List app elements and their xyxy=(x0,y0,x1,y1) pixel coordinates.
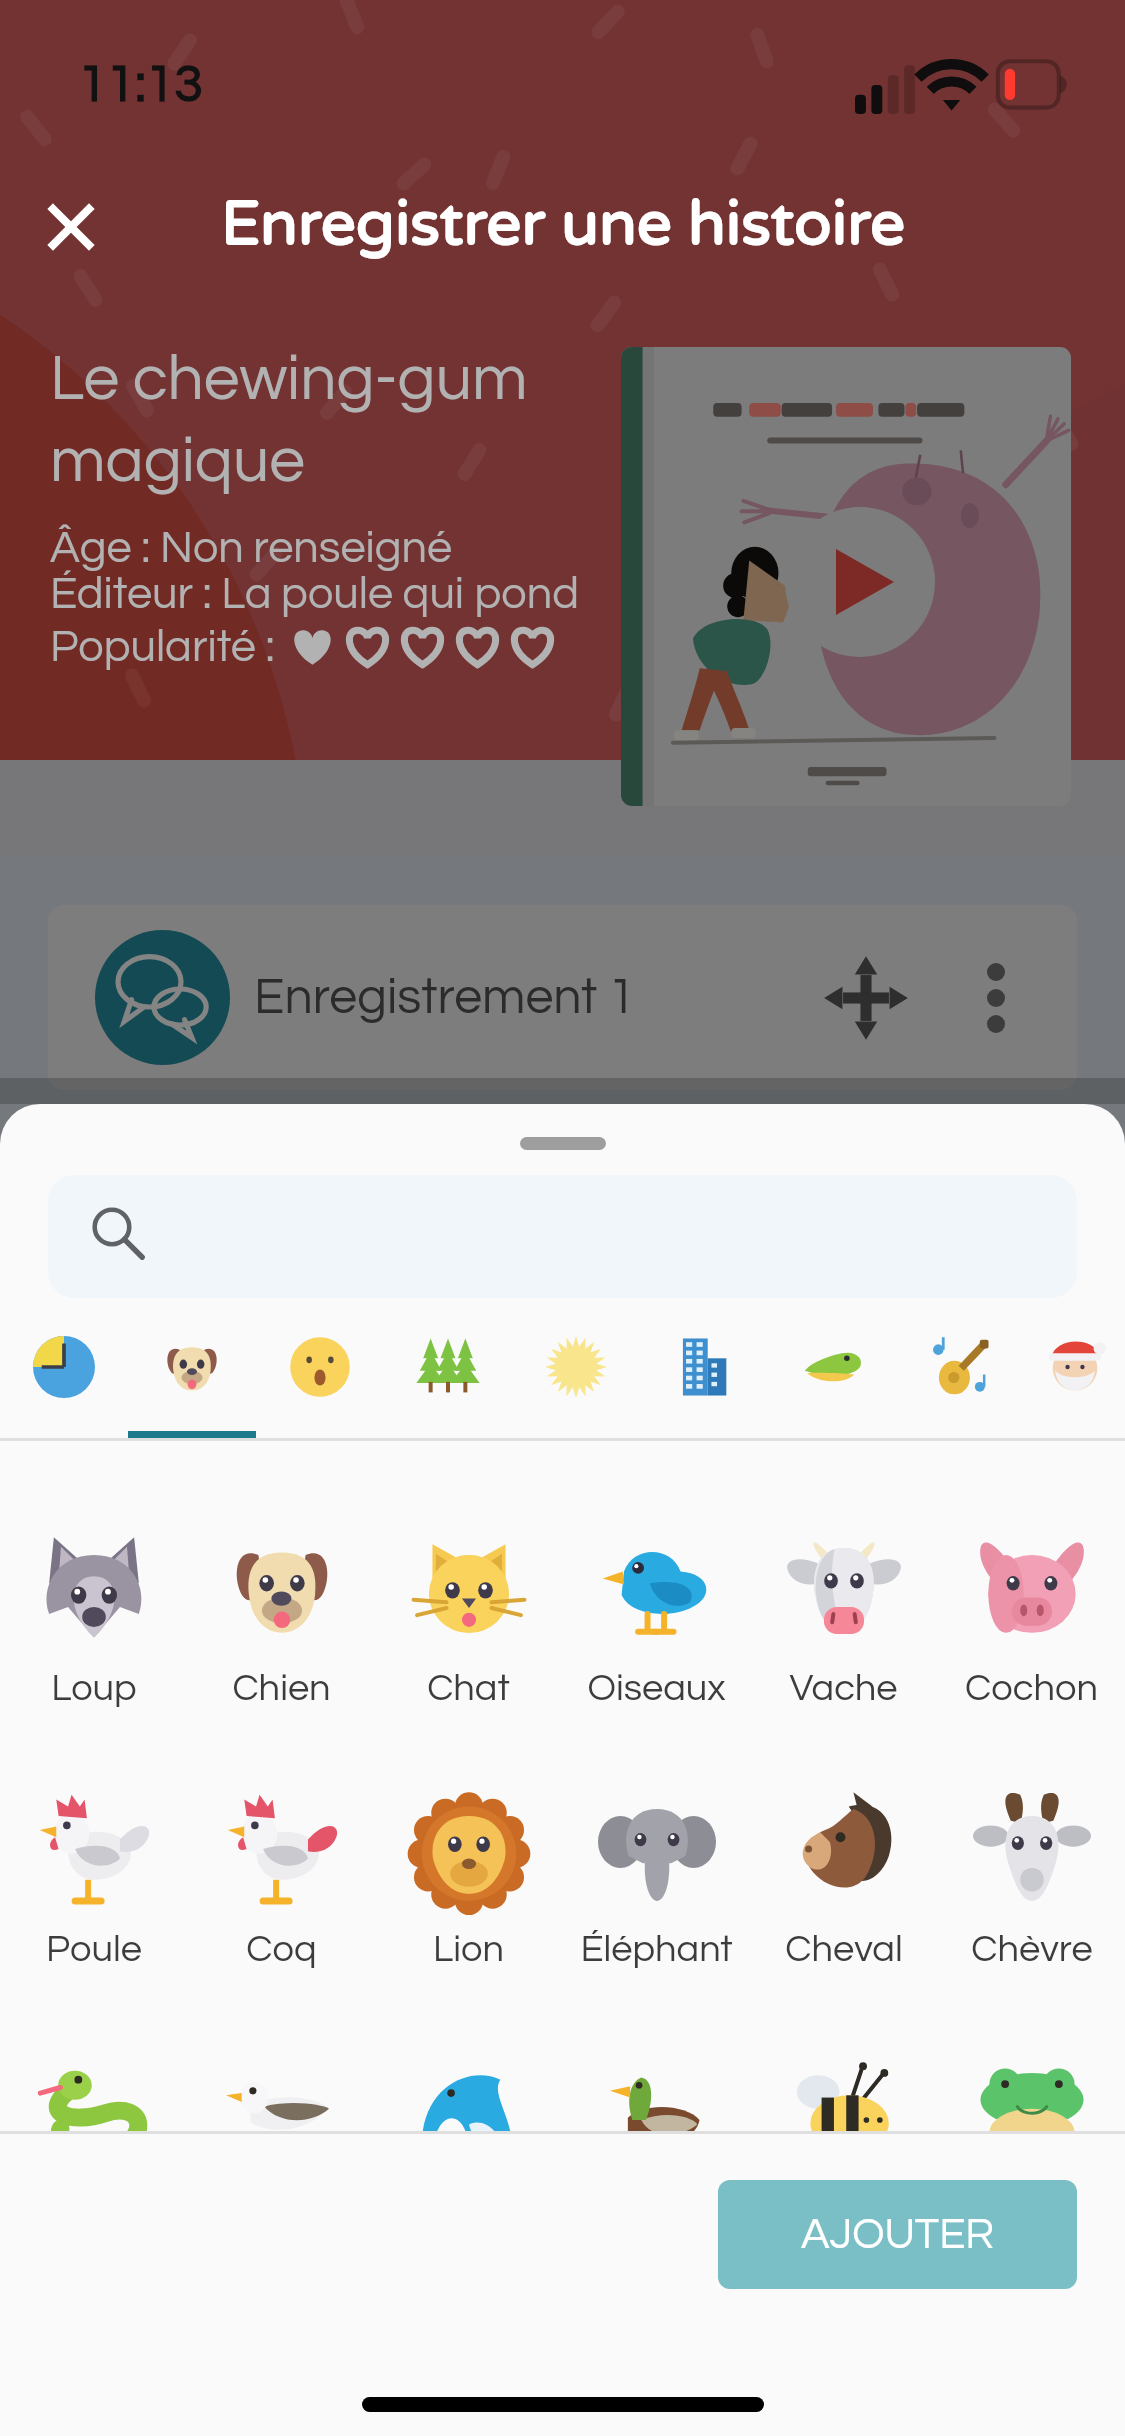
staticText: Oiseaux xyxy=(587,1669,726,1708)
button[interactable]: Catégorie 1 xyxy=(0,1317,128,1438)
staticText: Chien xyxy=(232,1669,331,1708)
button[interactable]: Plus d'options xyxy=(961,963,1031,1033)
staticText: Poule xyxy=(46,1930,142,1969)
button[interactable]: Catégorie 5 xyxy=(512,1317,640,1438)
button[interactable]: Coq xyxy=(188,1790,375,1990)
button[interactable]: Chat xyxy=(375,1529,562,1729)
button[interactable]: Catégorie 6 xyxy=(640,1317,768,1438)
staticText: Le chewing-gum magique xyxy=(50,347,620,495)
staticText: Éditeur : La poule qui pond xyxy=(50,571,579,617)
button[interactable]: Catégorie 4 xyxy=(384,1317,512,1438)
button[interactable] xyxy=(938,2055,1125,2131)
button[interactable]: Fermer xyxy=(0,153,142,295)
staticText: Âge : Non renseigné xyxy=(50,525,453,571)
button[interactable]: Catégorie 2 xyxy=(128,1317,256,1438)
button[interactable]: Catégorie 9 xyxy=(1024,1317,1125,1438)
button[interactable]: Catégorie 8 xyxy=(896,1317,1024,1438)
button[interactable]: Rechercher xyxy=(48,1175,1077,1298)
button[interactable]: Cheval xyxy=(750,1790,937,1990)
button[interactable]: Chien xyxy=(188,1529,375,1729)
button[interactable]: Cochon xyxy=(938,1529,1125,1729)
staticText: Chat xyxy=(427,1669,510,1708)
button[interactable]: AJOUTER xyxy=(718,2180,1077,2289)
button[interactable]: Lion xyxy=(375,1790,562,1990)
button[interactable] xyxy=(188,2055,375,2131)
button[interactable]: Vache xyxy=(750,1529,937,1729)
staticText: Enregistrer une histoire xyxy=(221,187,906,262)
staticText: Vache xyxy=(789,1669,898,1708)
button[interactable]: Chèvre xyxy=(938,1790,1125,1990)
staticText: Cochon xyxy=(965,1669,1098,1708)
button[interactable]: Oiseaux xyxy=(563,1529,750,1729)
button[interactable]: Loup xyxy=(0,1529,187,1729)
staticText: Coq xyxy=(246,1930,317,1969)
staticText: Popularité : xyxy=(50,624,285,670)
button[interactable]: Poule xyxy=(0,1790,187,1990)
button[interactable]: Enregistrement 1 xyxy=(48,905,1077,1090)
button[interactable] xyxy=(375,2055,562,2131)
staticText: Cheval xyxy=(785,1930,903,1969)
staticText: AJOUTER xyxy=(801,2213,995,2257)
staticText: Éléphant xyxy=(580,1930,733,1969)
button[interactable]: Déplacer xyxy=(821,953,911,1043)
button[interactable]: Éléphant xyxy=(563,1790,750,1990)
staticText: 11:13 xyxy=(78,58,203,112)
staticText: Chèvre xyxy=(971,1930,1093,1969)
button[interactable]: Catégorie 7 xyxy=(768,1317,896,1438)
button[interactable] xyxy=(563,2055,750,2131)
button[interactable] xyxy=(750,2055,937,2131)
staticText: Lion xyxy=(433,1930,504,1969)
staticText: Enregistrement 1 xyxy=(254,972,636,1024)
button[interactable]: Catégorie 3 xyxy=(256,1317,384,1438)
button[interactable]: Lire l'histoire xyxy=(785,507,935,657)
staticText: Loup xyxy=(51,1669,137,1708)
button[interactable] xyxy=(0,2055,187,2131)
